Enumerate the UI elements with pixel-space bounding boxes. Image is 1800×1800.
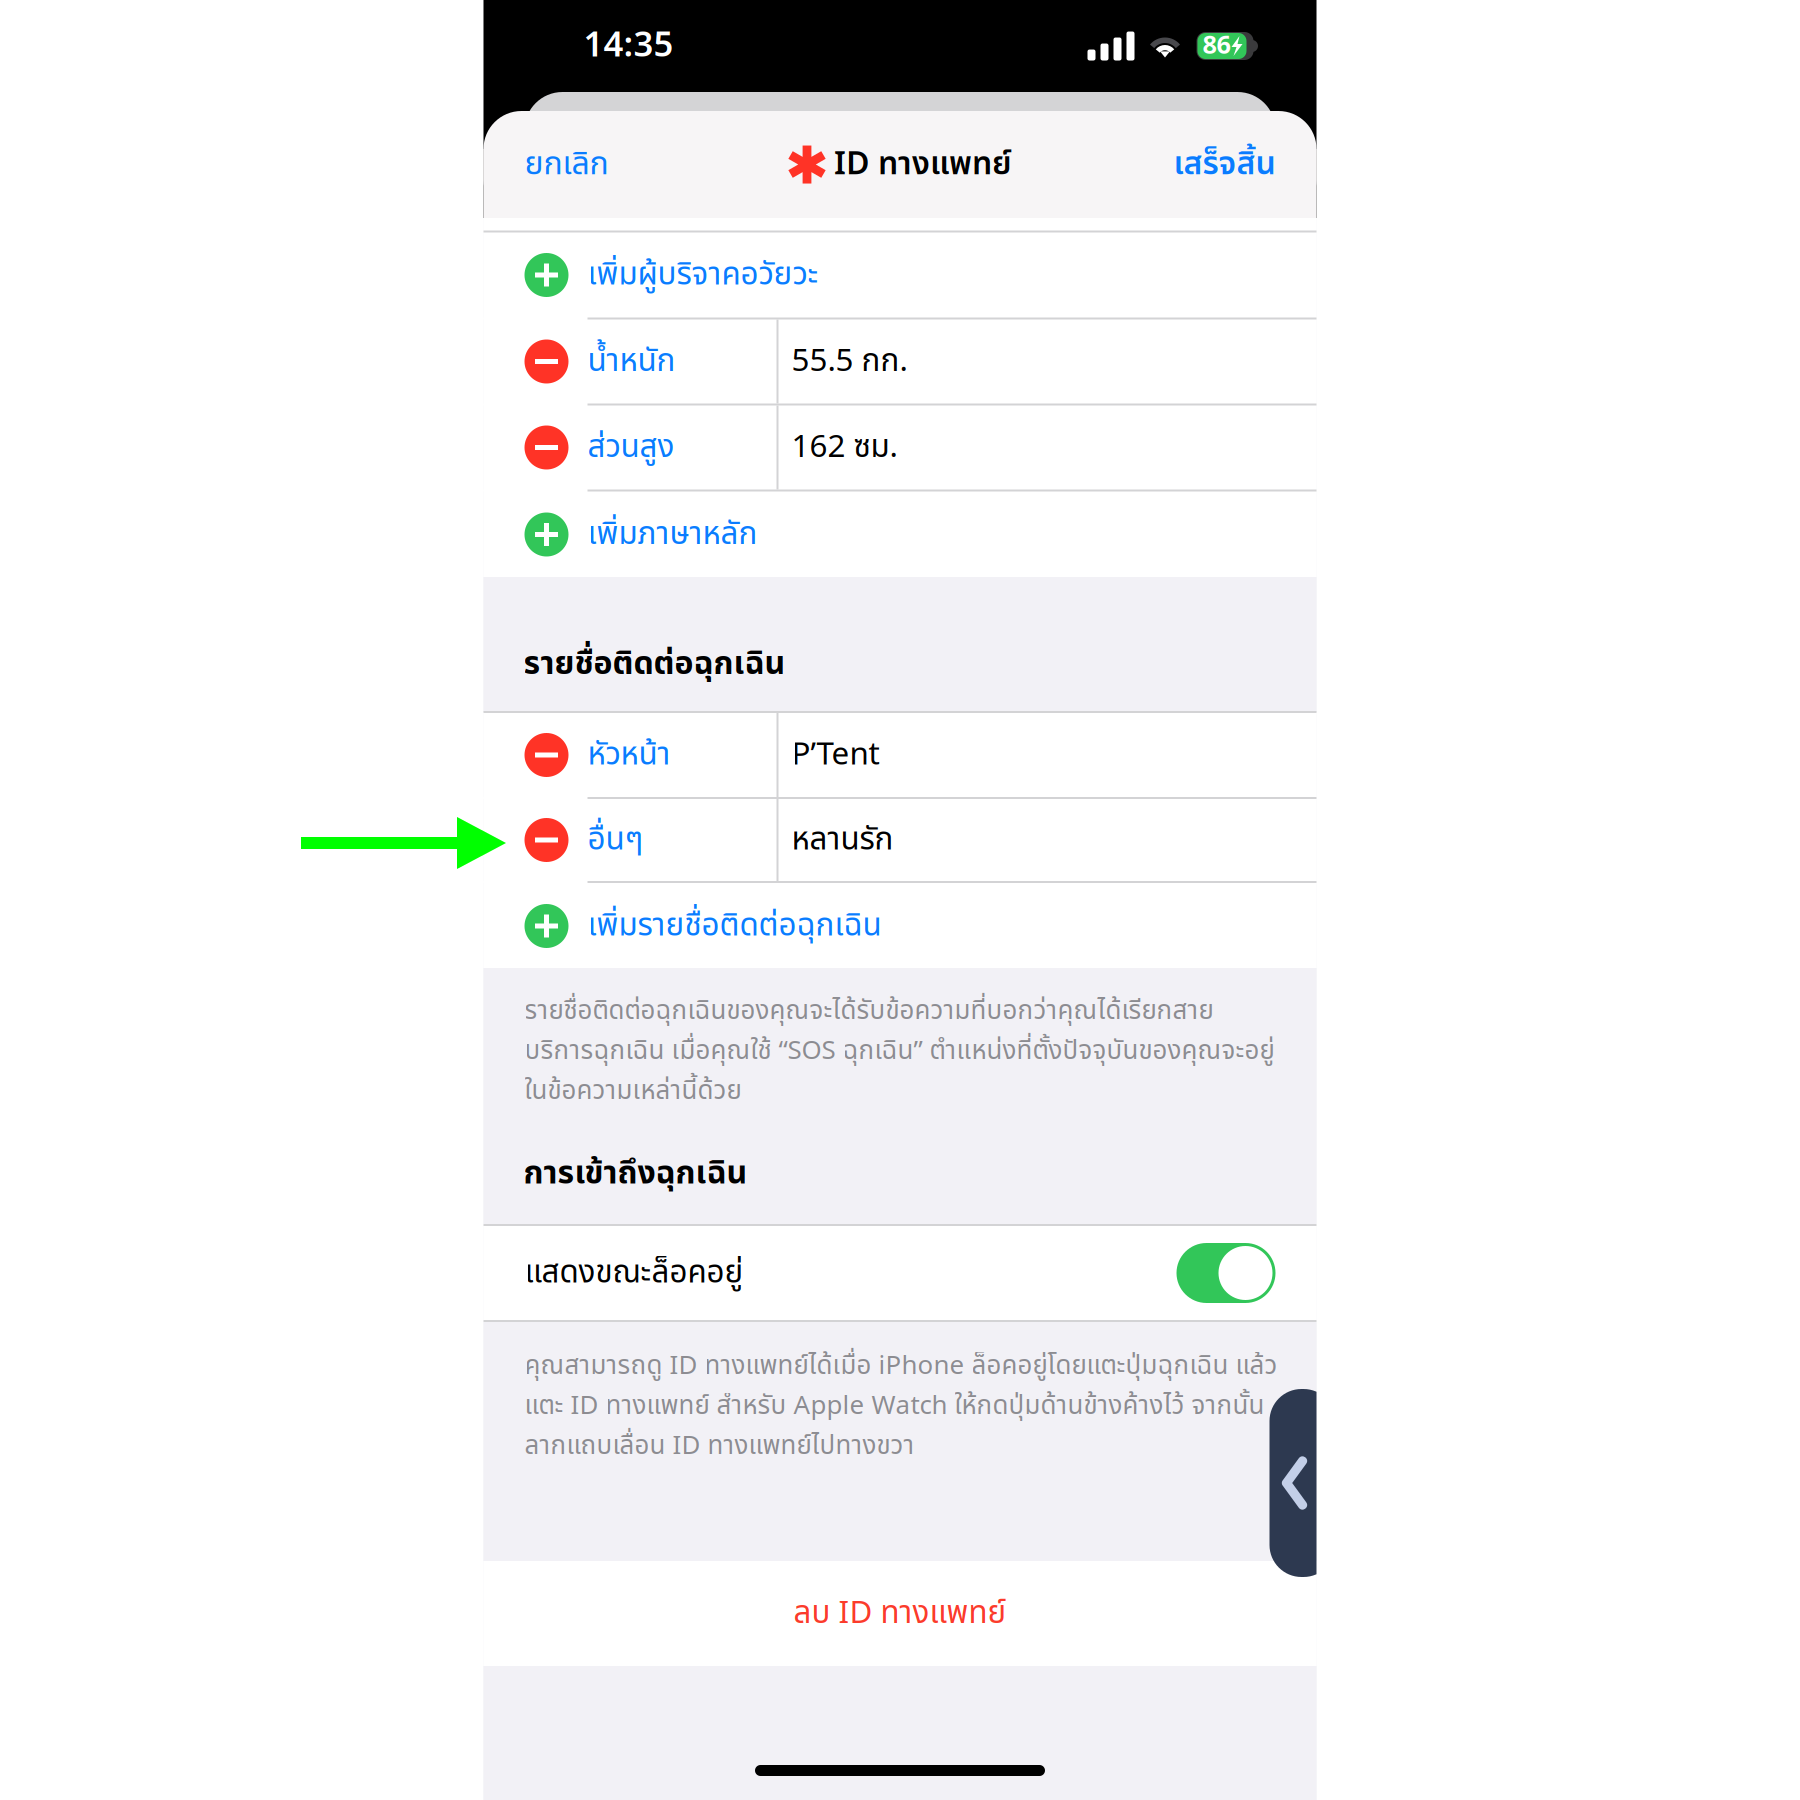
staticText: การเข้าถึงฉุกเฉิน (523, 1150, 747, 1198)
staticText: รายชื่อติดต่อฉุกเฉิน (523, 640, 785, 688)
staticText: เพิ่มภาษาหลัก (587, 511, 757, 558)
staticText: เสร็จสิ้น (1173, 140, 1275, 189)
button[interactable]: เพิ่มภาษาหลัก (483, 491, 1316, 577)
button[interactable]: เสร็จสิ้น (1149, 111, 1316, 218)
staticText: แสดงขณะล็อคอยู่ (524, 1249, 743, 1297)
staticText: 162 ซม. (791, 424, 897, 471)
staticText: หลานรัก (791, 816, 893, 864)
staticText: 55.5 กก. (791, 338, 907, 385)
staticText: ID ทางแพทย์ (834, 140, 1012, 189)
staticText: แตะ ID ทางแพทย์ สำหรับ Apple Watch ให้กด… (524, 1386, 1264, 1426)
button[interactable]: ส่วนสูง (483, 405, 1316, 489)
staticText: 86 (1202, 27, 1230, 65)
button[interactable]: แสดงขณะล็อคอยู่ (483, 1226, 1316, 1320)
button[interactable]: เพิ่มผู้บริจาคอวัยวะ (483, 232, 1316, 317)
button[interactable]: หัวหน้า (483, 713, 1316, 797)
staticText: อื่นๆ (587, 816, 643, 864)
button[interactable]: ลบ ID ทางแพทย์ (483, 1561, 1316, 1666)
staticText: หัวหน้า (587, 731, 670, 779)
staticText: P’Tent (791, 731, 879, 779)
button[interactable]: ยกเลิก (483, 111, 632, 218)
staticText: รายชื่อติดต่อฉุกเฉินของคุณจะได้รับข้อควา… (524, 991, 1213, 1031)
button[interactable]: น้ำหนัก (483, 319, 1316, 403)
staticText: เพิ่มผู้บริจาคอวัยวะ (587, 251, 818, 299)
staticText: เพิ่มรายชื่อติดต่อฉุกเฉิน (587, 902, 881, 950)
staticText: คุณสามารถดู ID ทางแพทย์ได้เมื่อ iPhone ล… (524, 1346, 1277, 1386)
staticText: 14:35 (583, 20, 673, 72)
staticText: ลากแถบเลื่อน ID ทางแพทย์ไปทางขวา (524, 1426, 914, 1466)
button[interactable]: อื่นๆ (483, 799, 1316, 881)
staticText: ในข้อความเหล่านี้ด้วย (524, 1071, 741, 1111)
staticText: ลบ ID ทางแพทย์ (793, 1590, 1006, 1637)
staticText: ยกเลิก (524, 140, 608, 189)
staticText: ส่วนสูง (587, 424, 674, 471)
staticText: น้ำหนัก (587, 338, 675, 385)
button[interactable]: เพิ่มรายชื่อติดต่อฉุกเฉิน (483, 883, 1316, 969)
staticText: บริการฉุกเฉิน เมื่อคุณใช้ “SOS ฉุกเฉิน” … (524, 1031, 1274, 1071)
button[interactable]: Back to previous app (1269, 1389, 1316, 1577)
